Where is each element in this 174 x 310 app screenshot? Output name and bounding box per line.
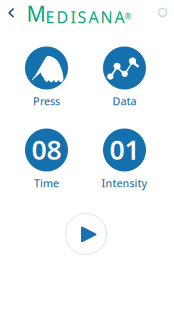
staticText: Press <box>33 94 60 108</box>
button[interactable]: Press <box>6 46 86 106</box>
button[interactable]: 01 <box>84 128 164 188</box>
staticText: Data <box>112 94 136 108</box>
button[interactable]: Start <box>65 213 106 254</box>
button[interactable]: Back <box>0 0 24 26</box>
button[interactable]: 08 <box>6 128 86 188</box>
staticText: Intensity <box>101 176 147 190</box>
button[interactable]: Connection status <box>151 1 173 23</box>
staticText: M <box>26 0 45 28</box>
button[interactable]: Data <box>84 46 164 106</box>
staticText: ® <box>124 11 131 22</box>
button[interactable]: Medisana <box>26 0 131 26</box>
staticText: 01 <box>109 132 139 167</box>
staticText: 08 <box>31 132 61 167</box>
staticText: Time <box>34 176 59 190</box>
staticText: EDISANA <box>45 6 124 28</box>
